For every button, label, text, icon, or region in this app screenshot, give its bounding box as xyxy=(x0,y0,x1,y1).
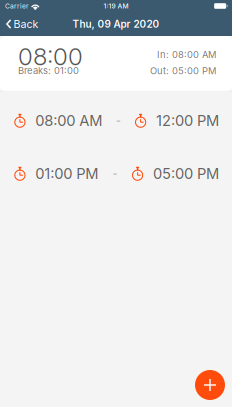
staticText: 08:00 xyxy=(18,42,83,71)
staticText: 12:00 PM xyxy=(156,112,219,129)
staticText: - xyxy=(116,114,121,127)
staticText: 08:00 AM xyxy=(35,112,102,129)
staticText: Back xyxy=(13,17,38,30)
staticText: 01:00 PM xyxy=(35,165,98,182)
staticText: 1:19 AM xyxy=(103,2,128,10)
staticText: Carrier xyxy=(5,2,29,10)
staticText: - xyxy=(112,167,117,180)
button[interactable]: 01:00 PM xyxy=(0,161,232,187)
button[interactable]: 08:00 AM xyxy=(0,108,232,134)
staticText: Out: 05:00 PM xyxy=(150,65,216,77)
staticText: Thu, 09 Apr 2020 xyxy=(72,18,159,30)
button[interactable]: Add time entry xyxy=(195,370,225,400)
staticText: Breaks: 01:00 xyxy=(18,65,79,76)
staticText: 05:00 PM xyxy=(153,165,219,182)
staticText: In: 08:00 AM xyxy=(157,49,216,60)
button[interactable]: Back xyxy=(0,13,46,35)
